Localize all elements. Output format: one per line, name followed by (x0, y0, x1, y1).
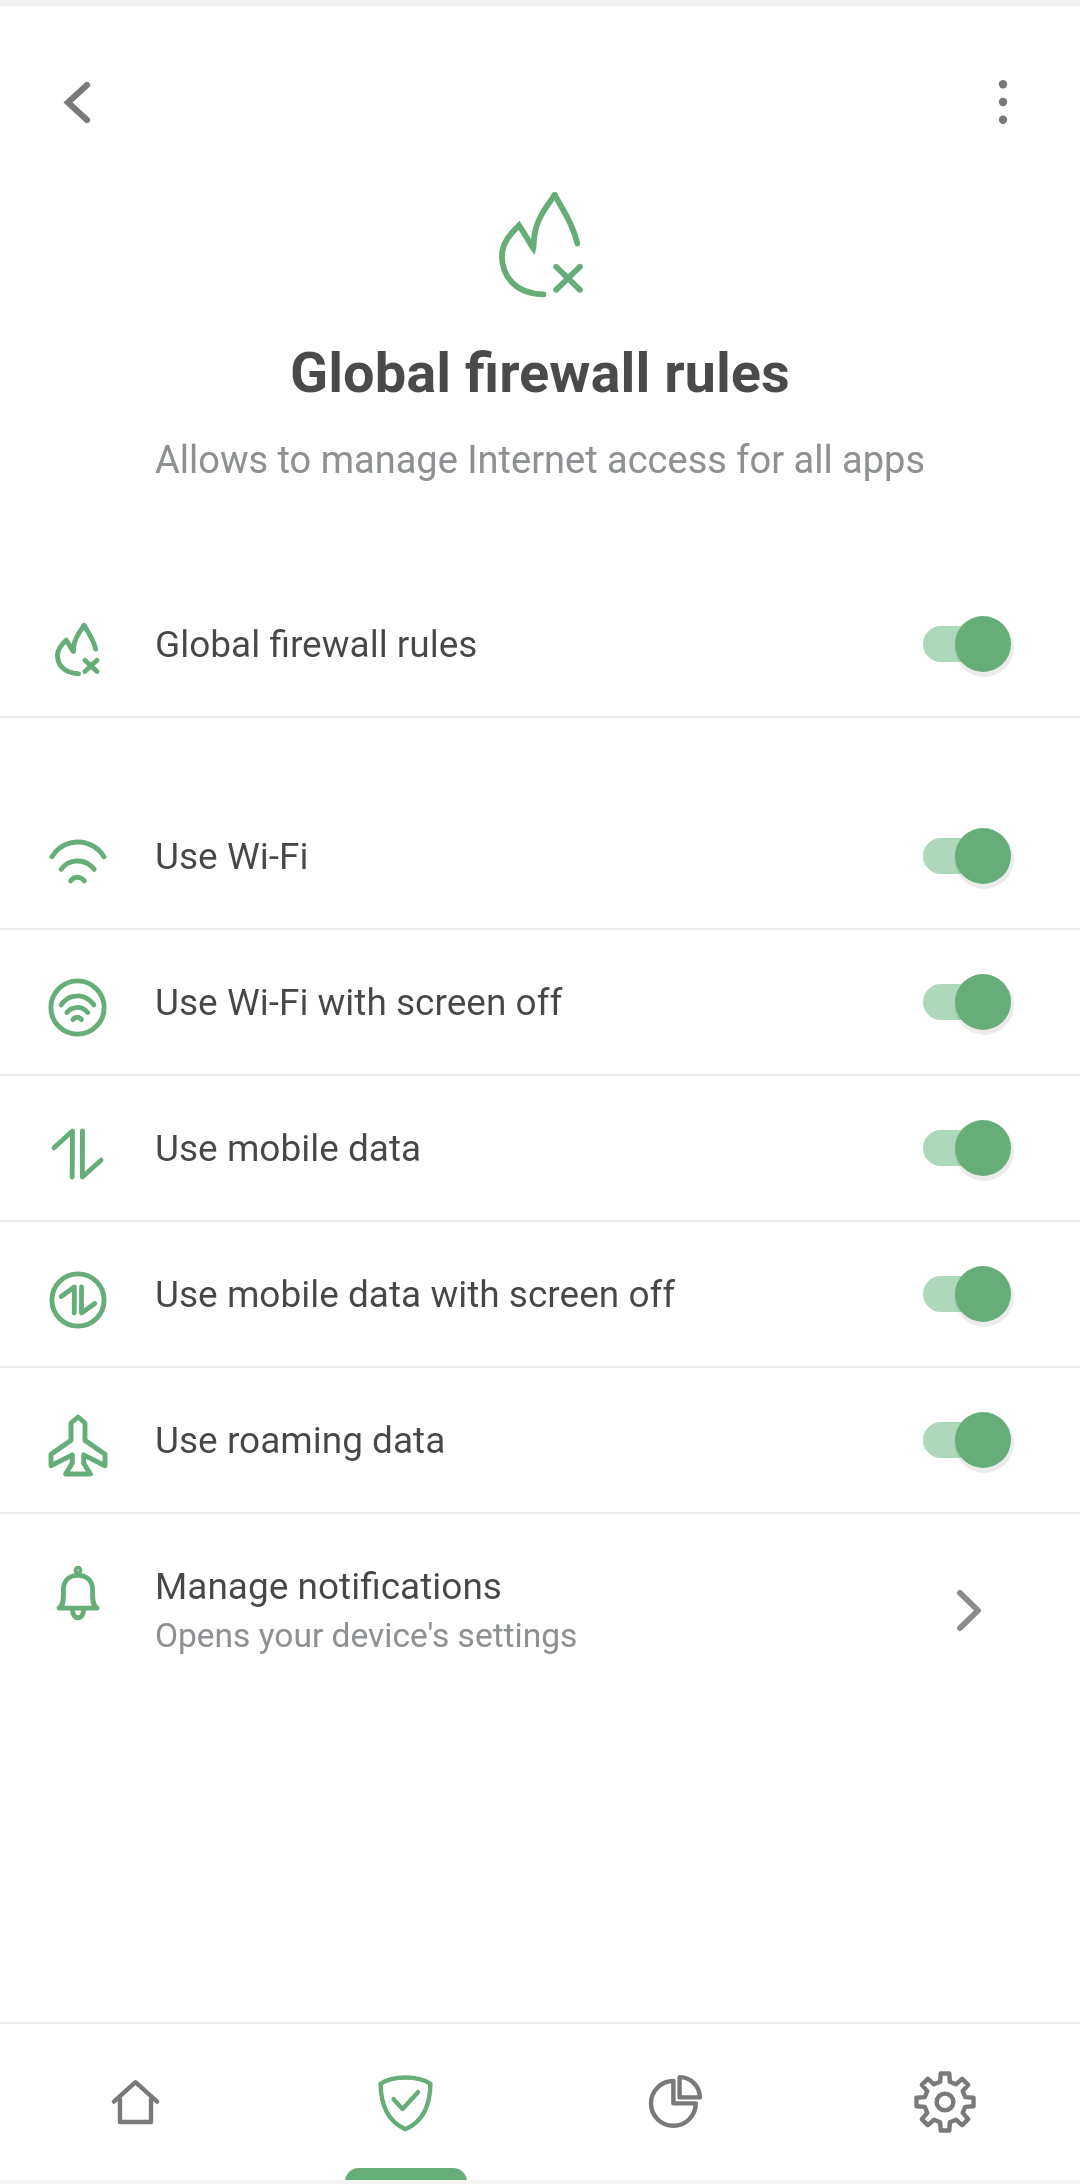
button[interactable]: Toggle (923, 572, 1023, 716)
staticText: Use mobile data with screen off (155, 1273, 676, 1316)
button[interactable]: Global firewall rules (0, 572, 1080, 716)
staticText: Global firewall rules (155, 623, 478, 666)
button[interactable]: More options (957, 56, 1049, 148)
button[interactable]: Home (0, 2024, 270, 2179)
staticText: Opens your device's settings (155, 1616, 578, 1655)
button[interactable]: Use mobile data with screen off (0, 1222, 1080, 1366)
button[interactable]: Open notification settings (923, 1564, 1015, 1656)
button[interactable]: Use Wi-Fi (0, 784, 1080, 928)
staticText: Use Wi-Fi with screen off (155, 981, 563, 1024)
staticText: Allows to manage Internet access for all… (0, 438, 1080, 483)
staticText: Use roaming data (155, 1419, 446, 1462)
button[interactable]: Back (31, 56, 123, 148)
button[interactable]: Manage notifications (0, 1514, 1080, 1706)
button[interactable]: Use mobile data (0, 1076, 1080, 1220)
button[interactable]: Protection (270, 2024, 540, 2179)
button[interactable]: Toggle (923, 1076, 1023, 1220)
staticText: Use Wi-Fi (155, 835, 309, 878)
staticText: Global firewall rules (0, 340, 1080, 406)
button[interactable]: Toggle (923, 784, 1023, 928)
button[interactable]: Statistics (540, 2024, 810, 2179)
button[interactable]: Toggle (923, 930, 1023, 1074)
staticText: Manage notifications (155, 1565, 502, 1608)
button[interactable]: Use roaming data (0, 1368, 1080, 1512)
button[interactable]: Settings (810, 2024, 1080, 2179)
staticText: Use mobile data (155, 1127, 422, 1170)
button[interactable]: Toggle (923, 1222, 1023, 1366)
button[interactable]: Toggle (923, 1368, 1023, 1512)
button[interactable]: Use Wi-Fi with screen off (0, 930, 1080, 1074)
